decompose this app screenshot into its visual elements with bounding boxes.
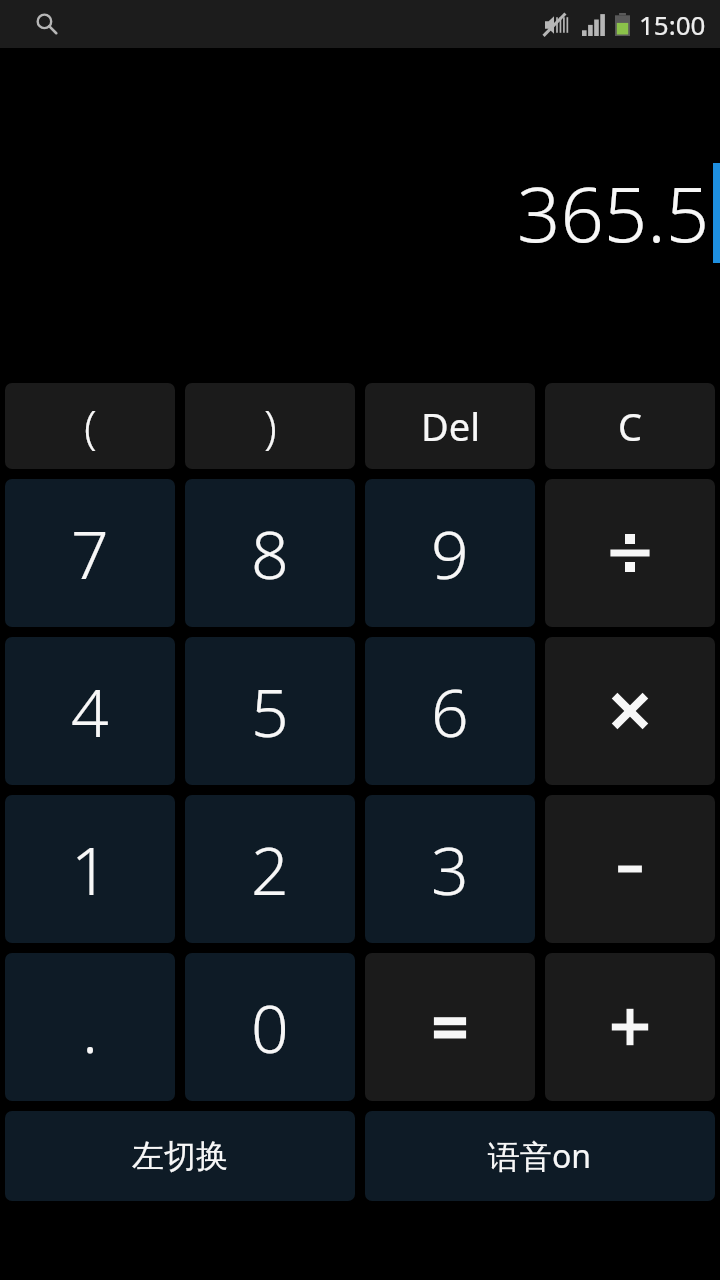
staticText: 6 bbox=[431, 666, 469, 756]
button[interactable]: 8 bbox=[185, 479, 355, 627]
staticText: ( bbox=[84, 395, 97, 458]
button[interactable]: Multiply bbox=[545, 637, 715, 785]
staticText: ) bbox=[264, 395, 277, 458]
staticText: . bbox=[82, 982, 99, 1072]
button[interactable]: ( bbox=[5, 383, 175, 469]
button[interactable]: 语音on bbox=[365, 1111, 715, 1201]
staticText: 8 bbox=[251, 508, 289, 598]
staticText: 0 bbox=[251, 982, 289, 1072]
staticText: 1 bbox=[71, 824, 109, 914]
staticText: 5 bbox=[251, 666, 289, 756]
button[interactable]: 5 bbox=[185, 637, 355, 785]
button[interactable]: Plus bbox=[545, 953, 715, 1101]
button[interactable]: ) bbox=[185, 383, 355, 469]
button[interactable]: 左切换 bbox=[5, 1111, 355, 1201]
button[interactable]: 3 bbox=[365, 795, 535, 943]
staticText: 3 bbox=[431, 824, 469, 914]
staticText: 4 bbox=[71, 666, 109, 756]
button[interactable]: Del bbox=[365, 383, 535, 469]
button[interactable]: 9 bbox=[365, 479, 535, 627]
button[interactable]: 2 bbox=[185, 795, 355, 943]
button[interactable]: 6 bbox=[365, 637, 535, 785]
button[interactable]: 4 bbox=[5, 637, 175, 785]
button[interactable]: 1 bbox=[5, 795, 175, 943]
staticText: 语音on bbox=[488, 1134, 592, 1178]
staticText: 9 bbox=[431, 508, 469, 598]
staticText: 365.5 bbox=[517, 161, 710, 265]
button[interactable]: Divide bbox=[545, 479, 715, 627]
button[interactable]: 7 bbox=[5, 479, 175, 627]
staticText: 左切换 bbox=[132, 1136, 228, 1176]
button[interactable]: Minus bbox=[545, 795, 715, 943]
button[interactable]: 0 bbox=[185, 953, 355, 1101]
button[interactable]: . bbox=[5, 953, 175, 1101]
staticText: 15:00 bbox=[639, 7, 706, 42]
button[interactable]: C bbox=[545, 383, 715, 469]
staticText: Del bbox=[421, 400, 480, 452]
other: Search bbox=[33, 11, 59, 37]
staticText: 7 bbox=[71, 508, 109, 598]
button[interactable]: Equals bbox=[365, 953, 535, 1101]
staticText: 2 bbox=[251, 824, 289, 914]
staticText: C bbox=[618, 400, 643, 452]
